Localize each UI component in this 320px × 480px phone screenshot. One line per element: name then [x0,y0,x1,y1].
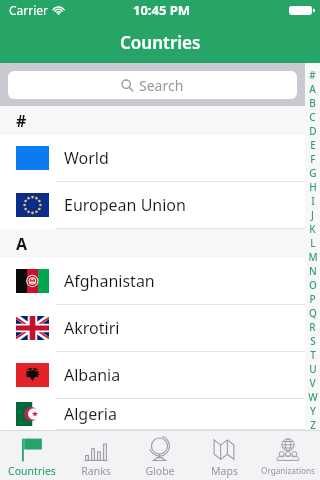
staticText: A [309,82,316,96]
button[interactable]: Algeria [0,399,305,430]
button[interactable]: Afghanistan [0,258,305,305]
button[interactable]: Alphabet index [305,63,320,430]
staticText: A [16,233,28,255]
staticText: Maps [211,464,238,478]
button[interactable]: European Union [0,182,305,229]
staticText: I [311,194,315,208]
button[interactable]: Ranks [64,431,128,480]
staticText: Z [310,418,316,430]
staticText: Akrotiri [64,317,120,339]
staticText: E [310,138,316,152]
staticText: W [308,390,318,404]
staticText: T [310,348,316,362]
button[interactable]: World [0,135,305,182]
button[interactable]: Maps [192,431,256,480]
staticText: Countries [120,31,201,54]
staticText: Y [310,404,316,418]
button[interactable]: Countries [0,431,64,480]
staticText: V [309,376,316,390]
staticText: # [16,110,27,132]
staticText: B [309,96,316,110]
button[interactable]: Globe [128,431,192,480]
staticText: K [309,222,316,236]
staticText: G [309,166,317,180]
staticText: Countries [8,464,56,478]
staticText: World [64,147,109,169]
staticText: P [309,292,316,306]
staticText: F [310,152,316,166]
staticText: O [309,278,317,292]
staticText: Q [309,306,317,320]
staticText: # [309,68,316,82]
button[interactable]: Organizations [256,431,320,480]
staticText: European Union [64,194,186,216]
staticText: L [310,236,316,250]
staticText: Search [139,76,184,95]
staticText: U [309,362,317,376]
button[interactable]: Albania [0,352,305,399]
staticText: Algeria [64,403,117,425]
staticText: D [309,124,317,138]
staticText: Carrier [9,2,49,18]
staticText: R [309,320,316,334]
staticText: H [309,180,317,194]
staticText: C [309,110,316,124]
staticText: J [311,208,314,222]
staticText: S [310,334,316,348]
staticText: Ranks [81,464,111,478]
staticText: N [309,264,317,278]
staticText: Organizations [261,465,315,476]
staticText: 10:45 PM [133,1,191,19]
staticText: M [308,250,318,264]
button[interactable]: Akrotiri [0,305,305,352]
staticText: Albania [64,364,121,386]
button[interactable]: Search [8,71,297,99]
staticText: Afghanistan [64,270,155,292]
staticText: Globe [145,464,175,478]
